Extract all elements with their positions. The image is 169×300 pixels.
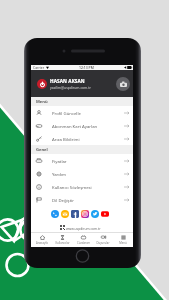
button[interactable]: YouTube — [101, 210, 109, 218]
staticText: Cüzdanım — [77, 241, 90, 245]
button[interactable]: Dil Değiştir — [31, 193, 133, 206]
button[interactable]: Twitter — [91, 210, 99, 218]
button[interactable]: Duyurular — [93, 233, 113, 247]
staticText: Yardım — [52, 171, 66, 177]
staticText: Kullanıcılar — [55, 241, 70, 245]
staticText: Carrier — [33, 65, 45, 70]
staticText: HASAN AKSAN — [50, 78, 85, 84]
staticText: Genel — [36, 147, 48, 153]
button[interactable]: Change profile photo — [116, 77, 130, 91]
button[interactable]: Abonman Kart Ayarları — [31, 119, 133, 132]
button[interactable]: Anasayfa — [31, 233, 52, 247]
staticText: 12:13 PM — [79, 65, 94, 70]
button[interactable]: Fiyatlar — [31, 154, 133, 167]
staticText: Dil Değiştir — [52, 197, 75, 203]
button[interactable]: Menü — [113, 233, 133, 247]
staticText: Anasayfa — [36, 241, 48, 245]
button[interactable]: Profil Güncelle — [31, 106, 133, 119]
button[interactable]: Kullanıcı Sözleşmesi — [31, 180, 133, 193]
staticText: Fiyatlar — [52, 158, 67, 164]
staticText: Menü — [119, 241, 127, 245]
staticText: Kullanıcı Sözleşmesi — [52, 184, 92, 190]
button[interactable]: E-mail — [61, 210, 69, 218]
button[interactable]: HASAN AKSAN — [31, 70, 133, 97]
button[interactable]: Call — [51, 210, 59, 218]
button[interactable]: Arıza Bildirimi — [31, 132, 133, 145]
button[interactable]: Yardım — [31, 167, 133, 180]
staticText: yazilim@uspdirum.com.tr — [50, 85, 91, 90]
staticText: Arıza Bildirimi — [52, 136, 80, 142]
staticText: Menü — [36, 99, 48, 105]
staticText: Abonman Kart Ayarları — [52, 123, 98, 129]
button[interactable]: Instagram — [81, 210, 89, 218]
staticText: www.uspdirum.com.tr — [66, 226, 101, 230]
staticText: Profil Güncelle — [52, 110, 81, 116]
button[interactable]: Cüzdanım — [73, 233, 93, 247]
button[interactable]: Facebook — [71, 210, 79, 218]
button[interactable]: Kullanıcılar — [52, 233, 73, 247]
staticText: Duyurular — [96, 241, 110, 245]
